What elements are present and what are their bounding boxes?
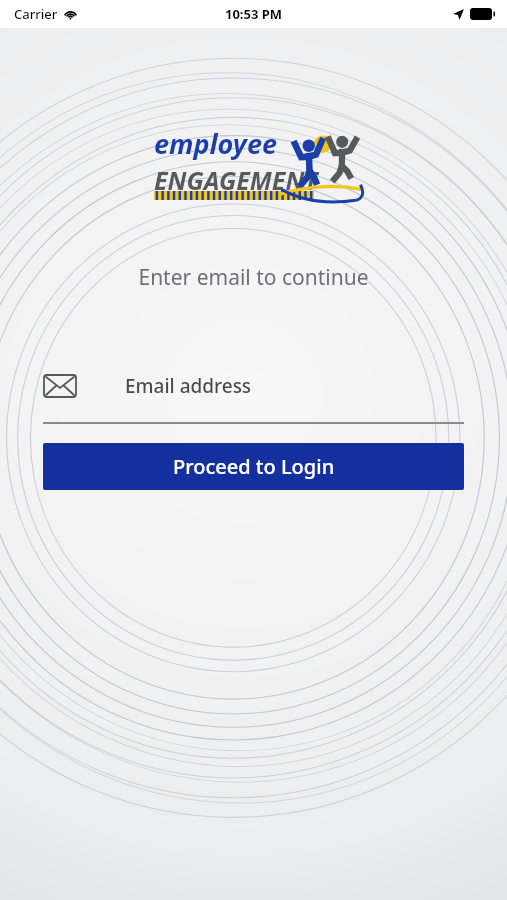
staticText: ENGAGEMENT bbox=[154, 163, 318, 197]
staticText: employee bbox=[154, 125, 277, 162]
staticText: Carrier bbox=[14, 5, 58, 23]
other: Email bbox=[43, 374, 77, 398]
button[interactable]: Email bbox=[43, 367, 464, 424]
staticText: 10:53 PM bbox=[225, 5, 283, 23]
staticText: Email address bbox=[125, 373, 252, 399]
staticText: Proceed to Login bbox=[173, 453, 335, 480]
staticText: Enter email to continue bbox=[138, 263, 369, 292]
button[interactable]: Proceed to Login bbox=[43, 443, 464, 490]
